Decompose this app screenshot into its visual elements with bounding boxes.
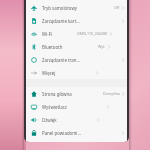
staticText: Wyświetlacz — [42, 104, 67, 110]
button[interactable]: Strona główna — [26, 87, 127, 100]
staticText: Off — [114, 5, 120, 10]
button[interactable]: Dźwięk — [26, 113, 127, 126]
staticText: Zarządzanie kartami SIM — [42, 18, 82, 24]
staticText: Panel powiadomień i pasek stan... — [42, 130, 82, 136]
staticText: Strona główna — [42, 91, 72, 97]
button[interactable]: Panel powiadomień i pasek stan... — [26, 126, 127, 139]
button[interactable]: Wi-Fi — [26, 27, 127, 40]
button[interactable]: Wyświetlacz — [26, 100, 127, 113]
staticText: OMN-110_244288 — [77, 31, 108, 36]
button[interactable]: Zarządzanie kartami SIM — [26, 14, 127, 27]
button[interactable]: Bluetooth — [26, 40, 127, 53]
button[interactable]: Tryb samolotowy — [26, 1, 127, 14]
staticText: Wi-Fi — [42, 31, 53, 37]
staticText: Zarządzanie transmisją danych — [42, 57, 82, 63]
button[interactable]: Zarządzanie transmisją danych — [26, 53, 127, 66]
staticText: Więcej — [42, 70, 56, 76]
staticText: Dźwięk — [42, 117, 57, 123]
staticText: Bluetooth — [42, 44, 63, 50]
staticText: Tryb samolotowy — [42, 5, 78, 11]
staticText: Wył. — [98, 44, 106, 49]
staticText: Domyślna — [103, 91, 120, 96]
button[interactable]: Więcej — [26, 66, 127, 79]
